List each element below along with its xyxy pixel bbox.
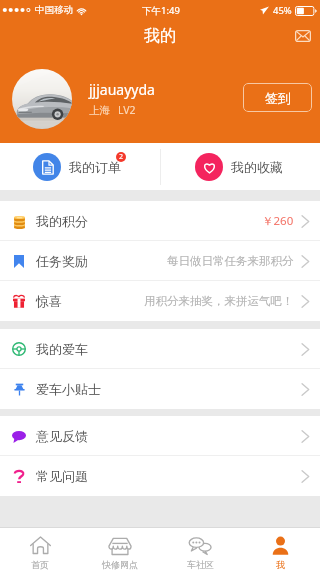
button[interactable]: 意见反馈 — [0, 416, 320, 456]
staticText: 惊喜 — [36, 293, 62, 309]
button[interactable]: 我的收藏 — [160, 143, 320, 190]
staticText: 爱车小贴士 — [36, 381, 101, 397]
staticText: 快修网点 — [102, 559, 138, 570]
staticText: 我的 — [144, 26, 176, 46]
staticText: 我的收藏 — [231, 159, 283, 175]
staticText: 常见问题 — [36, 468, 88, 484]
staticText: 我的爱车 — [36, 341, 88, 357]
staticText: 意见反馈 — [36, 428, 88, 444]
button[interactable]: 车社区 — [160, 528, 240, 576]
button[interactable]: 签到 — [243, 83, 312, 112]
staticText: 下午1:49 — [142, 4, 180, 17]
staticText: LV2 — [118, 103, 136, 117]
button[interactable]: 我的爱车 — [0, 329, 320, 369]
button[interactable]: 首页 — [0, 528, 80, 576]
button[interactable]: 任务奖励 — [0, 241, 320, 281]
staticText: 我的积分 — [36, 213, 88, 229]
button[interactable]: 爱车小贴士 — [0, 369, 320, 409]
button[interactable]: Messages — [288, 21, 318, 51]
button[interactable]: 我的订单 — [0, 143, 160, 190]
button[interactable]: 我 — [240, 528, 320, 576]
button[interactable]: 常见问题 — [0, 456, 320, 496]
staticText: 车社区 — [187, 559, 214, 570]
button[interactable]: 我的积分 — [0, 201, 320, 241]
staticText: 上海 — [89, 104, 110, 117]
staticText: 签到 — [265, 90, 291, 106]
staticText: jjjauayyda — [89, 80, 155, 99]
staticText: 中国移动 — [35, 4, 73, 16]
staticText: 45% — [273, 4, 292, 17]
staticText: 首页 — [31, 559, 49, 570]
staticText: 每日做日常任务来那积分 — [167, 254, 294, 268]
button[interactable]: 快修网点 — [80, 528, 160, 576]
staticText: 我 — [276, 559, 285, 570]
staticText: 我的订单 — [69, 159, 121, 175]
button[interactable]: 惊喜 — [0, 281, 320, 321]
staticText: ￥260 — [262, 213, 294, 229]
staticText: 任务奖励 — [36, 253, 88, 269]
staticText: 2 — [119, 152, 124, 162]
staticText: 用积分来抽奖，来拼运气吧！ — [144, 294, 294, 308]
